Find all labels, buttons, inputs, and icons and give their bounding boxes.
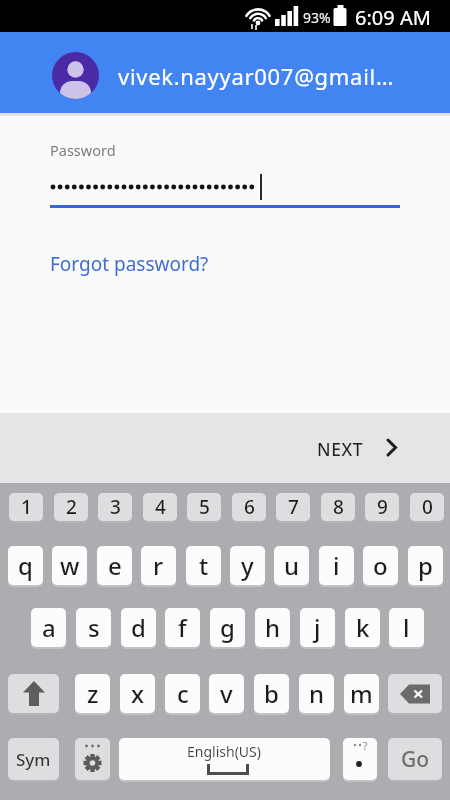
staticText: e — [108, 549, 122, 582]
staticText: a — [42, 611, 56, 644]
button[interactable]: g — [210, 608, 245, 647]
staticText: l — [403, 611, 410, 644]
button[interactable] — [75, 738, 110, 780]
button[interactable]: t — [186, 546, 221, 585]
button[interactable]: Go — [388, 738, 442, 780]
staticText: 4 — [155, 494, 166, 520]
staticText: Go — [401, 745, 430, 774]
staticText: 6 — [244, 494, 255, 520]
button[interactable]: l — [389, 608, 424, 647]
button[interactable]: s — [76, 608, 111, 647]
button[interactable]: ? — [343, 738, 377, 780]
button[interactable]: 0 — [410, 493, 444, 521]
button[interactable]: NEXT — [300, 425, 410, 470]
staticText: 9 — [377, 494, 388, 520]
staticText: n — [309, 677, 325, 710]
staticText: d — [131, 611, 146, 644]
staticText: f — [178, 611, 187, 644]
button[interactable]: Sym — [8, 738, 59, 780]
button[interactable]: x — [120, 674, 155, 713]
button[interactable]: n — [299, 674, 334, 713]
button[interactable]: English(US) — [119, 738, 330, 780]
staticText: t — [199, 549, 209, 582]
staticText: j — [314, 611, 321, 644]
button[interactable]: e — [97, 546, 132, 585]
button[interactable]: b — [254, 674, 289, 713]
button[interactable]: o — [363, 546, 398, 585]
button[interactable]: r — [141, 546, 176, 585]
staticText: r — [153, 549, 164, 582]
staticText: 2 — [66, 494, 77, 520]
staticText: 7 — [288, 494, 299, 520]
button[interactable]: 6 — [232, 493, 266, 521]
button[interactable]: c — [165, 674, 200, 713]
staticText: m — [350, 677, 373, 710]
button[interactable]: j — [300, 608, 335, 647]
staticText: Password — [50, 140, 116, 160]
button[interactable]: 1 — [9, 493, 43, 521]
button[interactable]: h — [255, 608, 290, 647]
button[interactable]: 9 — [365, 493, 399, 521]
staticText: v — [220, 677, 233, 710]
staticText: 0 — [422, 494, 433, 520]
staticText: b — [264, 677, 279, 710]
staticText: y — [241, 549, 254, 582]
button[interactable]: q — [8, 546, 43, 585]
staticText: vivek.nayyar007@gmail… — [118, 61, 395, 91]
button[interactable]: u — [274, 546, 309, 585]
staticText: p — [418, 549, 433, 582]
button[interactable]: 3 — [98, 493, 132, 521]
button[interactable]: i — [319, 546, 354, 585]
button[interactable]: 8 — [321, 493, 355, 521]
button[interactable]: 7 — [276, 493, 310, 521]
button[interactable]: y — [230, 546, 265, 585]
button[interactable]: Forgot password? — [48, 248, 207, 274]
staticText: w — [60, 549, 80, 582]
button[interactable]: z — [75, 674, 110, 713]
staticText: NEXT — [317, 437, 364, 461]
button[interactable]: 5 — [187, 493, 221, 521]
button[interactable]: k — [345, 608, 380, 647]
button[interactable]: p — [408, 546, 443, 585]
staticText: q — [18, 549, 33, 582]
button[interactable]: m — [344, 674, 379, 713]
staticText: 1 — [21, 494, 32, 520]
staticText: 93% — [303, 8, 331, 27]
staticText: 5 — [199, 494, 210, 520]
button[interactable]: d — [121, 608, 156, 647]
staticText: s — [88, 611, 100, 644]
staticText: x — [131, 677, 145, 710]
button[interactable] — [388, 674, 442, 713]
staticText: Forgot password? — [50, 251, 209, 277]
button[interactable]: a — [31, 608, 66, 647]
button[interactable]: 4 — [143, 493, 177, 521]
button[interactable]: v — [209, 674, 244, 713]
staticText: 6:09 AM — [355, 4, 431, 31]
staticText: k — [356, 611, 370, 644]
staticText: English(US) — [187, 742, 261, 761]
staticText: i — [333, 549, 340, 582]
staticText: h — [265, 611, 281, 644]
staticText: 8 — [333, 494, 344, 520]
button[interactable]: 2 — [54, 493, 88, 521]
staticText: ? — [363, 739, 368, 753]
button[interactable] — [8, 674, 59, 713]
staticText: u — [284, 549, 300, 582]
staticText: Sym — [16, 748, 51, 771]
button[interactable]: w — [52, 546, 87, 585]
staticText: g — [220, 611, 235, 644]
staticText: 3 — [110, 494, 121, 520]
staticText: o — [373, 549, 388, 582]
staticText: c — [177, 677, 189, 710]
staticText: z — [87, 677, 99, 710]
button[interactable]: f — [165, 608, 200, 647]
